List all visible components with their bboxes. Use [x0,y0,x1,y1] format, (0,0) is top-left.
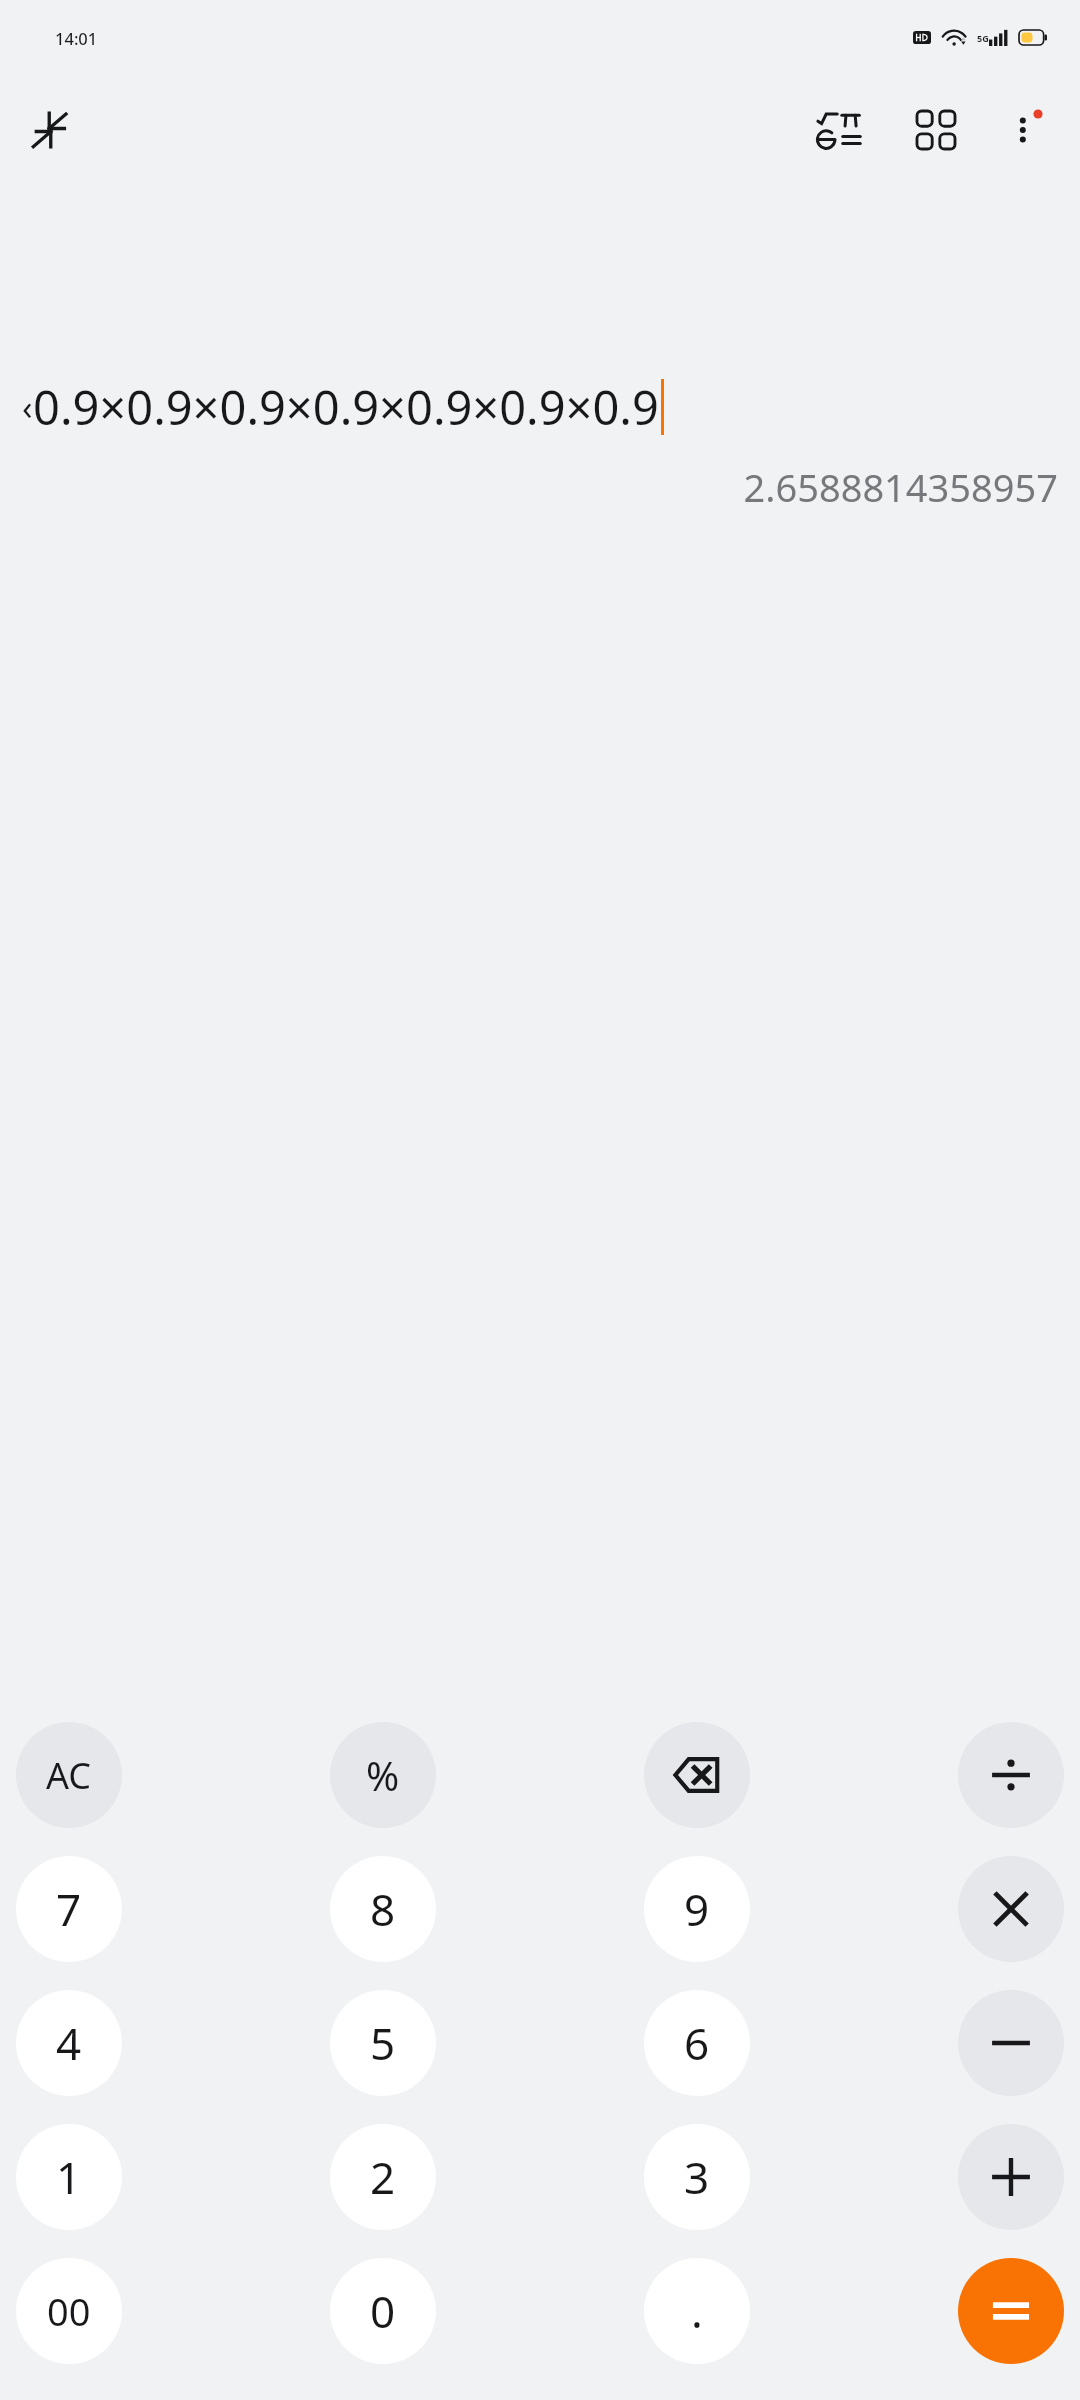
staticText: 5 [370,2013,396,2073]
staticText: 0 [370,2281,396,2341]
staticText: 1 [56,2147,82,2207]
button[interactable]: 8 [330,1856,436,1962]
staticText: AC [46,1751,92,1800]
button[interactable]: . [644,2258,750,2364]
button[interactable]: Multiply [958,1856,1064,1962]
button[interactable]: Backspace [644,1722,750,1828]
button[interactable]: Divide [958,1722,1064,1828]
staticText: 9 [684,1879,710,1939]
staticText: 8 [370,1879,396,1939]
staticText: ‹ [22,384,33,430]
button[interactable]: 7 [16,1856,122,1962]
button[interactable]: Minus [958,1990,1064,2096]
staticText: % [366,1748,400,1802]
button[interactable]: 2 [330,2124,436,2230]
staticText: 3 [684,2147,710,2207]
button[interactable]: Converters [894,88,978,172]
button[interactable]: 0 [330,2258,436,2364]
staticText: 2 [370,2147,396,2207]
button[interactable]: Plus [958,2124,1064,2230]
button[interactable]: 00 [16,2258,122,2364]
button[interactable]: 5 [330,1990,436,2096]
button[interactable]: 3 [644,2124,750,2230]
staticText: 00 [47,2285,91,2337]
staticText: 0.9×0.9×0.9×0.9×0.9×0.9×0.9 [33,375,659,439]
button[interactable]: 9 [644,1856,750,1962]
staticText: 6 [684,2013,710,2073]
button[interactable]: 1 [16,2124,122,2230]
staticText: 7 [56,1879,82,1939]
staticText: . [691,2281,703,2341]
button[interactable]: Collapse [14,94,86,166]
staticText: 14:01 [55,27,98,49]
staticText: 5G [977,32,989,44]
staticText: 4 [56,2013,82,2073]
button[interactable]: More options [984,88,1068,172]
button[interactable]: 6 [644,1990,750,2096]
button[interactable]: AC [16,1722,122,1828]
button[interactable]: % [330,1722,436,1828]
staticText: 2.6588814358957 [0,461,1058,513]
button[interactable]: Scientific mode [798,88,882,172]
button[interactable]: Equals [958,2258,1064,2364]
button[interactable]: 4 [16,1990,122,2096]
